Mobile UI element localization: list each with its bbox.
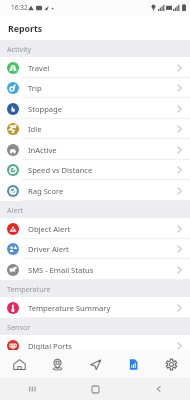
- button[interactable]: Reports: [114, 350, 152, 378]
- staticText: Temperature: [7, 284, 51, 294]
- staticText: Digital Ports: [28, 341, 72, 351]
- staticText: Alert: [7, 205, 24, 215]
- button[interactable]: Object Alert: [0, 218, 190, 239]
- button[interactable]: Navigate: [76, 350, 114, 378]
- button[interactable]: Settings: [152, 350, 190, 378]
- button[interactable]: Digital Ports: [0, 335, 190, 351]
- staticText: Rag Score: [28, 186, 64, 196]
- staticText: Trip: [28, 83, 42, 93]
- staticText: Speed vs Distance: [28, 165, 93, 175]
- staticText: Driver Alert: [28, 244, 69, 254]
- staticText: Travel: [28, 63, 50, 73]
- staticText: InActive: [28, 145, 57, 155]
- staticText: Activity: [7, 44, 32, 54]
- button[interactable]: Rag Score: [0, 180, 190, 201]
- staticText: SMS - Email Status: [28, 265, 94, 275]
- button[interactable]: InActive: [0, 139, 190, 160]
- button[interactable]: Driver Alert: [0, 239, 190, 259]
- button[interactable]: Temperature Summary: [0, 297, 190, 318]
- staticText: Reports: [8, 23, 43, 35]
- button[interactable]: Travel: [0, 57, 190, 78]
- button[interactable]: Trip: [0, 78, 190, 98]
- button[interactable]: Stoppage: [0, 98, 190, 119]
- button[interactable]: Home: [0, 350, 38, 378]
- staticText: Sensor: [7, 322, 31, 332]
- staticText: Stoppage: [28, 104, 63, 114]
- button[interactable]: Track: [38, 350, 76, 378]
- button[interactable]: SMS - Email Status: [0, 259, 190, 280]
- staticText: Object Alert: [28, 224, 71, 234]
- button[interactable]: Speed vs Distance: [0, 160, 190, 180]
- staticText: 16:32: [11, 3, 28, 12]
- button[interactable]: Idle: [0, 119, 190, 139]
- staticText: Temperature Summary: [28, 303, 111, 313]
- staticText: Idle: [28, 124, 42, 134]
